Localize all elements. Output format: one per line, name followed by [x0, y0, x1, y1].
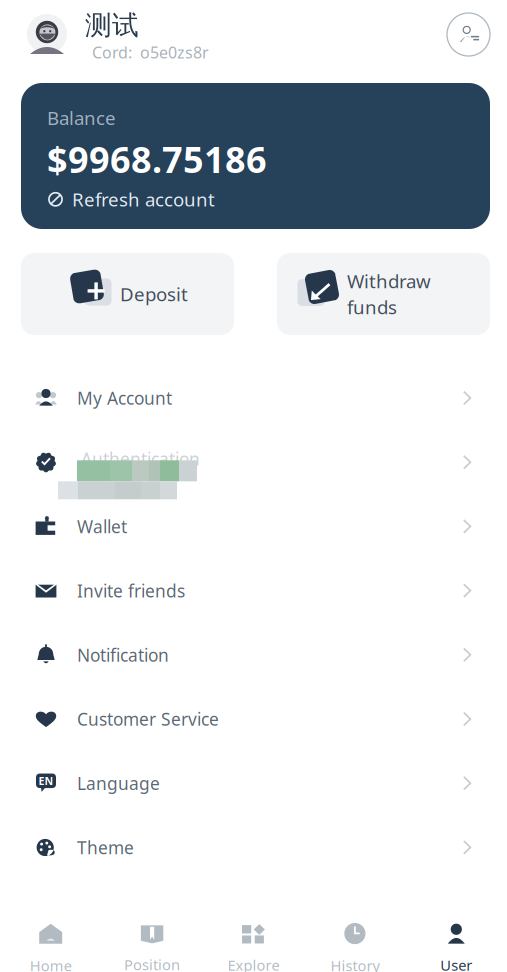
staticText: Invite friends — [77, 579, 185, 602]
staticText: $9968.75186 — [47, 135, 267, 183]
staticText: Balance — [47, 105, 116, 130]
button[interactable]: User — [406, 900, 507, 972]
staticText: Theme — [77, 836, 134, 859]
staticText: Explore — [227, 955, 279, 972]
button[interactable]: Withdraw — [277, 253, 490, 335]
button[interactable]: Notification — [0, 623, 507, 687]
staticText: Cord: o5e0zs8r — [92, 42, 209, 63]
button[interactable]: Home — [0, 900, 101, 972]
button[interactable]: Invite friends — [0, 559, 507, 623]
button[interactable]: My Account — [0, 366, 507, 430]
button[interactable]: Add friend — [447, 13, 490, 56]
button[interactable]: Deposit — [21, 253, 234, 335]
button[interactable]: History — [304, 900, 406, 972]
staticText: Deposit — [120, 282, 188, 306]
staticText: Notification — [77, 643, 169, 666]
button[interactable]: Position — [101, 900, 203, 972]
button[interactable]: Authentication — [0, 430, 507, 494]
staticText: EN — [38, 774, 53, 788]
staticText: Wallet — [77, 515, 127, 538]
button[interactable]: Customer Service — [0, 687, 507, 751]
button[interactable]: Wallet — [0, 494, 507, 559]
staticText: Customer Service — [77, 708, 219, 731]
staticText: 测试 — [85, 9, 139, 42]
staticText: My Account — [77, 387, 172, 410]
staticText: Refresh account — [72, 187, 215, 212]
staticText: User — [440, 955, 472, 972]
button[interactable]: Explore — [203, 900, 304, 972]
staticText: Language — [77, 772, 160, 795]
button[interactable]: Theme — [0, 815, 507, 880]
staticText: Position — [124, 955, 180, 972]
button[interactable]: Refresh account — [47, 187, 215, 212]
staticText: Home — [30, 956, 72, 972]
button[interactable]: EN — [0, 751, 507, 815]
staticText: History — [330, 956, 379, 972]
staticText: Withdraw — [347, 269, 431, 293]
staticText: funds — [347, 294, 397, 319]
staticText: Authentication — [81, 447, 200, 470]
